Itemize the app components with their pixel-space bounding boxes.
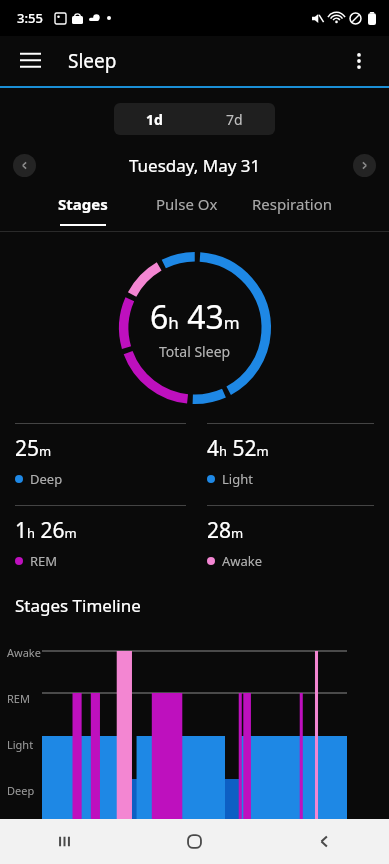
button[interactable]: 7d	[194, 103, 275, 135]
staticText: Pulse Ox	[156, 194, 218, 214]
staticText: Light	[7, 737, 34, 752]
staticText: 4h 52m	[207, 434, 269, 463]
staticText: Stages Timeline	[15, 594, 141, 617]
button[interactable]: More options	[337, 39, 381, 83]
staticText: REM	[30, 552, 58, 570]
button[interactable]: Menu	[8, 39, 52, 83]
staticText: Deep	[30, 470, 63, 488]
staticText: Awake	[222, 552, 263, 570]
button[interactable]: Previous day	[13, 154, 36, 177]
staticText: Deep	[7, 783, 35, 798]
button[interactable]: 4h 52m	[207, 423, 374, 488]
staticText: Respiration	[252, 194, 333, 214]
staticText: 1d	[146, 110, 163, 129]
staticText: 28m	[207, 516, 244, 545]
button[interactable]: 25m	[15, 423, 186, 488]
staticText: 7d	[226, 110, 243, 129]
staticText: 1h 26m	[15, 516, 77, 545]
staticText: 6h 43m	[150, 295, 240, 339]
staticText: Light	[222, 470, 253, 488]
staticText: REM	[7, 691, 30, 706]
staticText: Total Sleep	[159, 342, 231, 361]
button[interactable]: Pulse Ox	[156, 194, 218, 214]
staticText: Sleep	[68, 48, 117, 74]
staticText: Stages	[58, 194, 108, 214]
staticText: 3:55	[17, 9, 43, 27]
button[interactable]: 1h 26m	[15, 505, 186, 570]
button[interactable]: 28m	[207, 505, 374, 570]
staticText: Awake	[7, 645, 41, 660]
button[interactable]: Home	[129, 819, 259, 864]
button[interactable]: Next day	[353, 154, 376, 177]
button[interactable]: Recent apps	[0, 819, 129, 864]
button[interactable]: 1d	[114, 103, 194, 135]
button[interactable]: Stages	[58, 194, 108, 226]
staticText: 25m	[15, 434, 52, 463]
button[interactable]: Respiration	[252, 194, 333, 214]
staticText: Tuesday, May 31	[129, 154, 261, 177]
button[interactable]: Back	[259, 819, 389, 864]
